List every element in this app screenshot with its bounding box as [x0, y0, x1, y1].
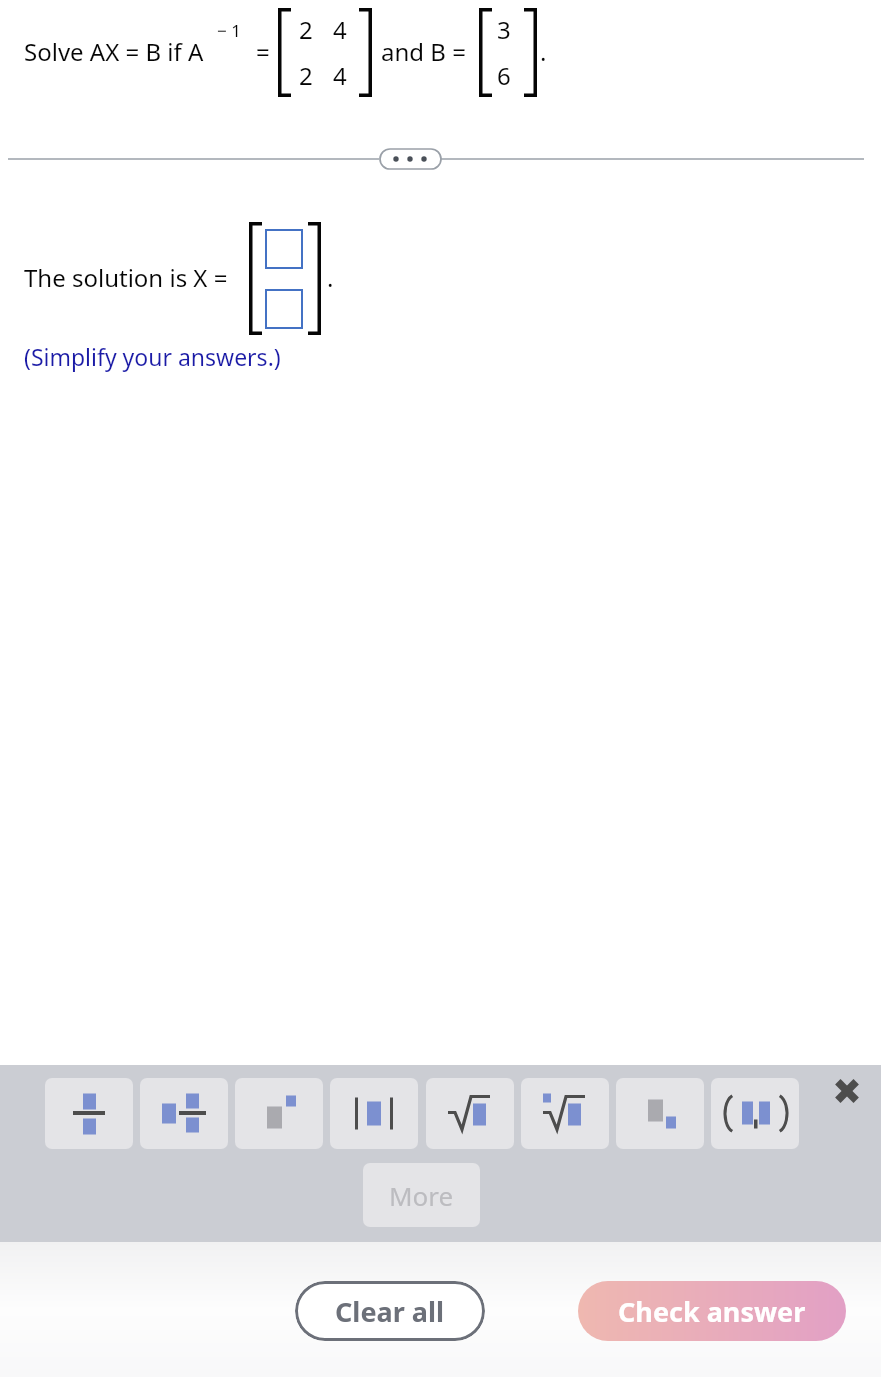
staticText: 3: [497, 13, 511, 46]
button[interactable]: Subscript: [616, 1078, 704, 1149]
button[interactable]: Check answer: [578, 1281, 846, 1341]
button[interactable]: Nth root: [521, 1078, 609, 1149]
staticText: 6: [497, 59, 511, 92]
button[interactable]: Mixed number: [140, 1078, 228, 1149]
staticText: More: [389, 1178, 454, 1213]
button[interactable]: Absolute value: [330, 1078, 418, 1149]
staticText: 4: [333, 59, 347, 92]
staticText: 2: [299, 13, 313, 46]
staticText: 4: [333, 13, 347, 46]
button[interactable]: More: [363, 1163, 480, 1227]
staticText: Solve AX = B if A: [24, 35, 204, 68]
button[interactable]: Close keyboard: [822, 1066, 872, 1116]
staticText: and B =: [381, 35, 466, 68]
button[interactable]: Second answer field: [265, 289, 303, 329]
button[interactable]: Fraction: [45, 1078, 133, 1149]
staticText: The solution is X =: [24, 261, 228, 294]
button[interactable]: First answer field: [265, 229, 303, 269]
button[interactable]: Ordered pair: [711, 1078, 799, 1149]
staticText: .: [327, 261, 334, 294]
staticText: .: [540, 35, 547, 68]
staticText: 2: [299, 59, 313, 92]
button[interactable]: Exponent: [235, 1078, 323, 1149]
button[interactable]: Clear all: [295, 1281, 485, 1341]
staticText: Check answer: [618, 1293, 806, 1330]
staticText: (Simplify your answers.): [24, 341, 281, 372]
staticText: − 1: [217, 19, 241, 42]
button[interactable]: Square root: [426, 1078, 514, 1149]
staticText: Clear all: [335, 1293, 445, 1330]
staticText: =: [256, 35, 270, 68]
